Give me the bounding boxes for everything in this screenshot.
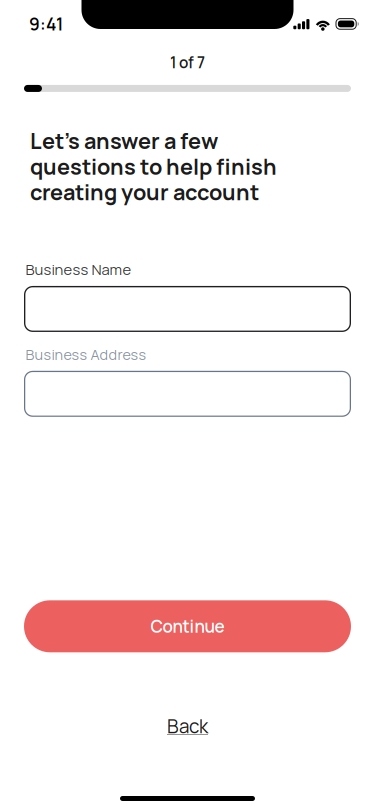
button[interactable]: Continue (24, 600, 351, 652)
staticText: Continue (150, 615, 224, 638)
button[interactable]: Back (0, 703, 375, 749)
staticText: Business Address (25, 345, 146, 364)
staticText: 1 of 7 (170, 52, 205, 73)
staticText: Let’s answer a few questions to help fin… (30, 126, 277, 207)
staticText: Back (167, 713, 208, 739)
staticText: 9:41 (29, 12, 63, 36)
staticText: Business Name (25, 259, 131, 279)
